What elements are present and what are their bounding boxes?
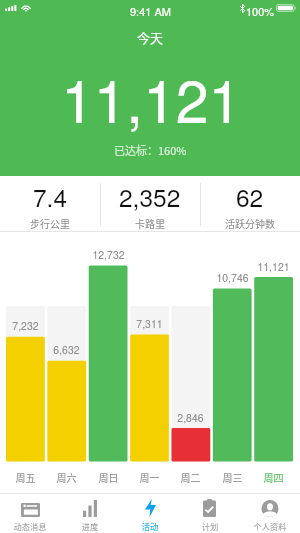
staticText: 7,311 <box>130 316 169 331</box>
staticText: 11,121 <box>254 259 293 274</box>
staticText: 周六 <box>47 470 86 484</box>
staticText: 步行公里 <box>30 216 70 230</box>
staticText: 活动 <box>120 520 180 532</box>
staticText: 12,732 <box>89 247 128 262</box>
staticText: 周四 <box>254 470 293 484</box>
staticText: 周三 <box>213 470 252 484</box>
button[interactable]: 计划 <box>180 494 240 533</box>
staticText: 10,746 <box>213 270 252 285</box>
staticText: 7,232 <box>6 318 45 333</box>
staticText: 7.4 <box>33 179 68 214</box>
button[interactable]: 2,352 <box>100 176 200 232</box>
staticText: 周二 <box>171 470 210 484</box>
staticText: 62 <box>236 179 264 214</box>
button[interactable]: 活动 <box>120 494 180 533</box>
button[interactable]: 7.4 <box>0 176 100 232</box>
staticText: 活跃分钟数 <box>225 216 275 230</box>
button[interactable]: 62 <box>200 176 300 232</box>
staticText: 11,121 <box>61 55 242 139</box>
staticText: 卡路里 <box>135 216 165 230</box>
staticText: 今天 <box>137 28 164 47</box>
staticText: 周一 <box>130 470 169 484</box>
staticText: 动态消息 <box>0 520 60 532</box>
staticText: 周五 <box>6 470 45 484</box>
staticText: 6,632 <box>47 342 86 357</box>
staticText: 9:41 AM <box>130 3 171 19</box>
button[interactable]: 个人资料 <box>240 494 300 533</box>
staticText: 进度 <box>60 520 120 532</box>
button[interactable]: 进度 <box>60 494 120 533</box>
staticText: 2,846 <box>171 410 210 425</box>
staticText: 2,352 <box>119 179 181 214</box>
staticText: 周日 <box>89 470 128 484</box>
staticText: 计划 <box>180 520 240 532</box>
staticText: 个人资料 <box>240 520 300 532</box>
staticText: 已达标：160% <box>114 142 187 158</box>
button[interactable]: 动态消息 <box>0 494 60 533</box>
staticText: 100% <box>246 3 275 19</box>
